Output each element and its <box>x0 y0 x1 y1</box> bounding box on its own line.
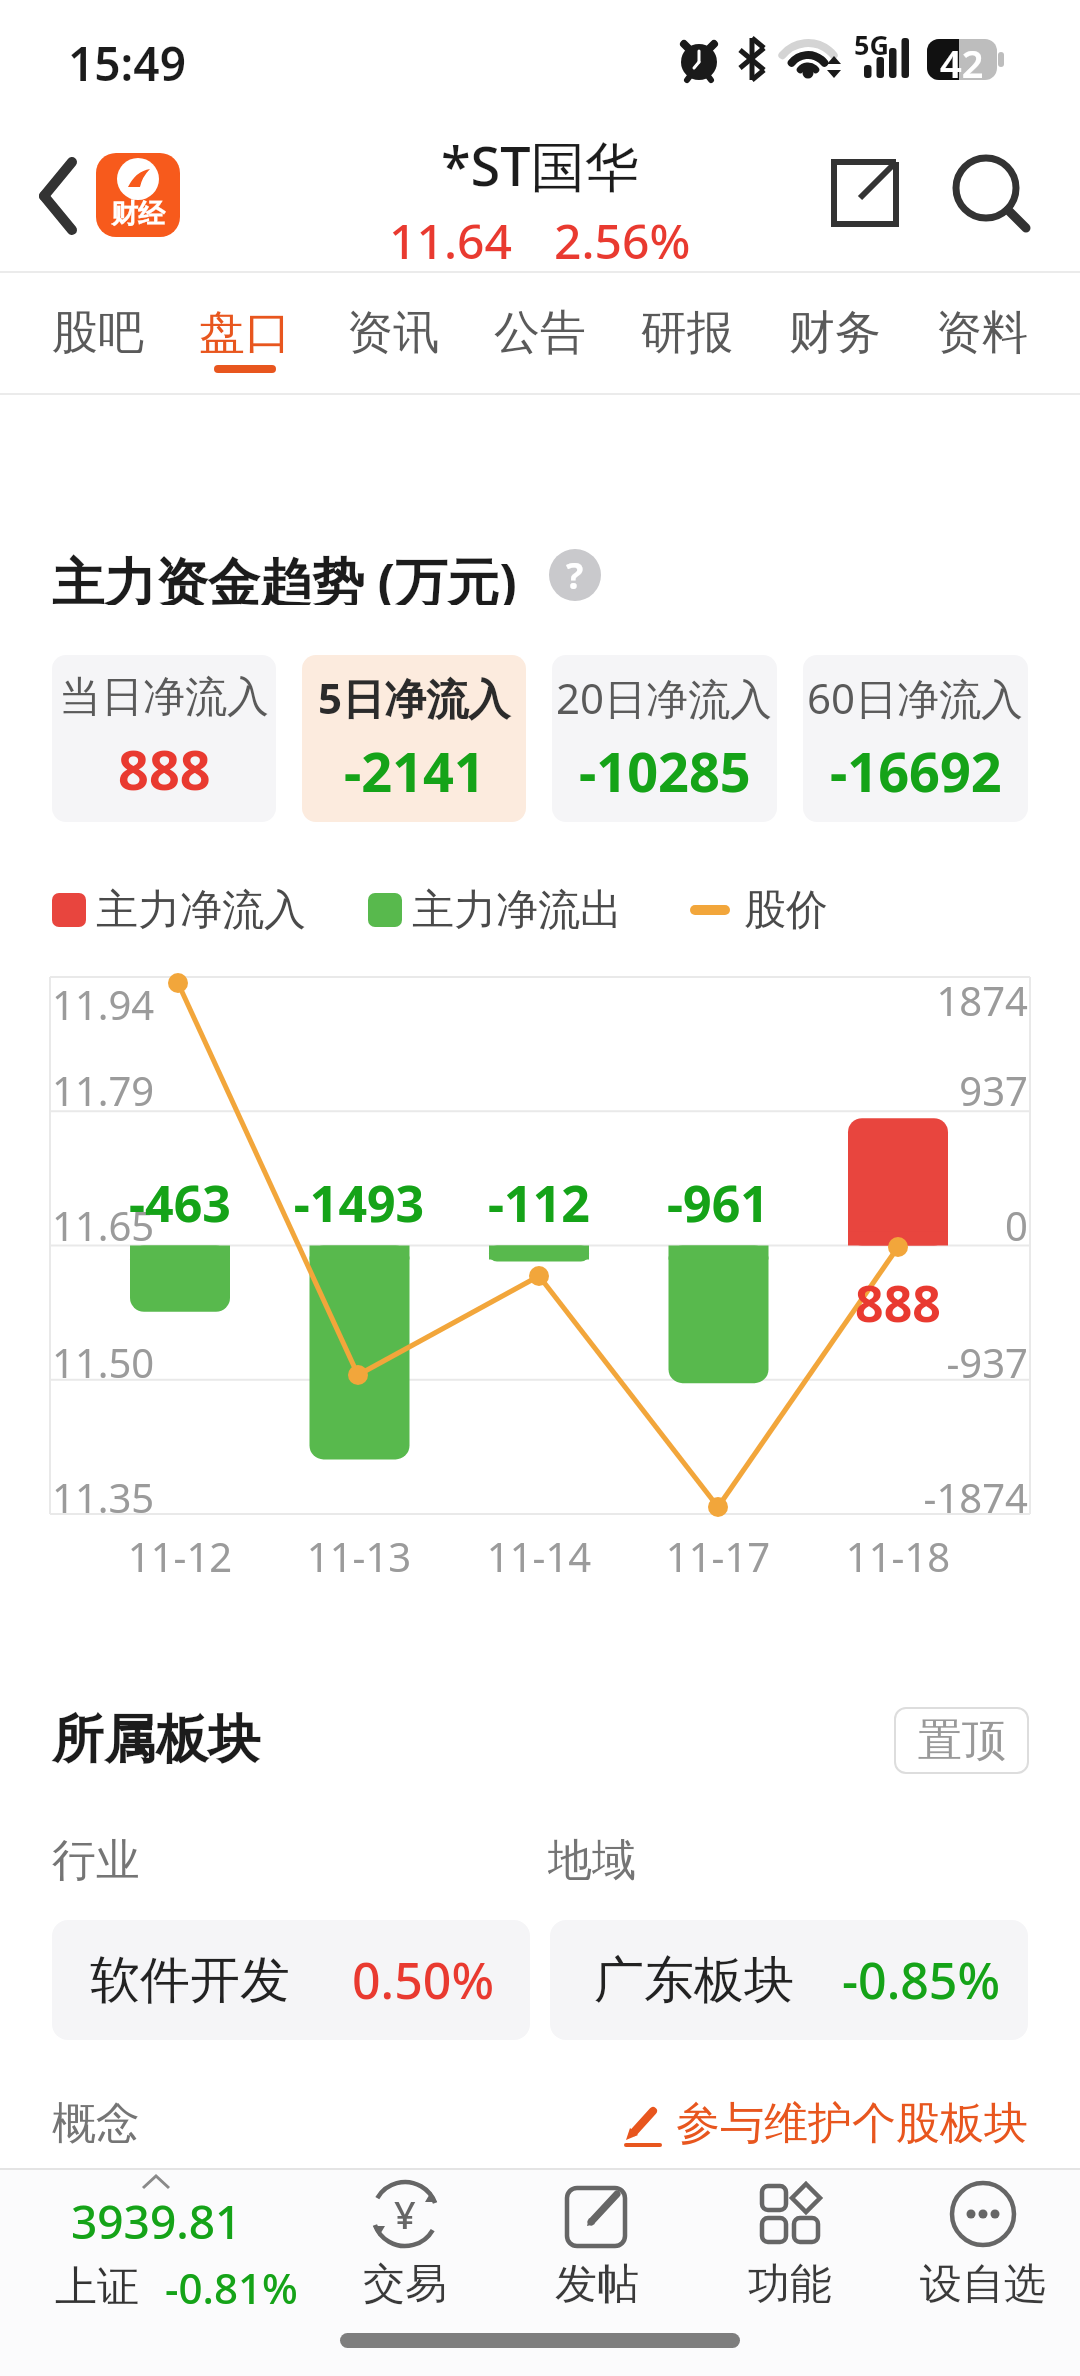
staticText: -0.85% <box>842 1946 1001 2014</box>
staticText: 11-17 <box>598 1529 838 1583</box>
staticText: 11.50 <box>52 1335 155 1389</box>
staticText: 1874 <box>778 973 1028 1027</box>
staticText: 5日净流入 <box>318 669 511 726</box>
staticText: 置顶 <box>918 1713 1006 1768</box>
staticText: 888 <box>778 1269 1018 1337</box>
staticText: 11-14 <box>419 1529 659 1583</box>
staticText: -937 <box>778 1335 1028 1389</box>
staticText: -463 <box>60 1169 300 1237</box>
staticText: 937 <box>778 1063 1028 1117</box>
button[interactable]: 3939.81 <box>40 2176 312 2316</box>
button[interactable]: 资讯 <box>347 273 439 393</box>
button[interactable]: 盘口 <box>199 273 291 393</box>
staticText: 11.35 <box>52 1470 155 1524</box>
staticText: 资讯 <box>347 304 439 362</box>
button[interactable]: 财经 <box>96 153 180 237</box>
staticText: 2.56% <box>554 208 691 273</box>
button[interactable]: 股吧 <box>52 273 144 393</box>
staticText: 股吧 <box>52 304 144 362</box>
staticText: 主力净流入 <box>96 884 306 936</box>
staticText: -112 <box>419 1169 659 1237</box>
staticText: 主力净流出 <box>412 884 622 936</box>
button[interactable] <box>816 148 906 238</box>
staticText: 盘口 <box>199 304 291 362</box>
staticText: 研报 <box>641 304 733 362</box>
staticText: -16692 <box>830 734 1002 808</box>
staticText: 概念 <box>52 2096 140 2151</box>
staticText: -1874 <box>778 1470 1028 1524</box>
staticText: 发帖 <box>555 2258 639 2311</box>
button[interactable]: 设自选 <box>893 2178 1073 2311</box>
staticText: 资料 <box>936 304 1028 362</box>
staticText: 11-12 <box>60 1529 300 1583</box>
staticText: 60日净流入 <box>807 669 1024 726</box>
staticText: ? <box>566 551 584 600</box>
button[interactable]: 发帖 <box>507 2178 687 2311</box>
button[interactable]: 研报 <box>641 273 733 393</box>
staticText: 11.94 <box>52 977 155 1031</box>
staticText: 设自选 <box>920 2258 1046 2311</box>
staticText: 888 <box>118 732 211 806</box>
button[interactable]: 20日净流入 <box>552 655 777 822</box>
staticText: 软件开发 <box>90 1949 290 2012</box>
staticText: 20日净流入 <box>556 669 773 726</box>
button[interactable]: 功能 <box>700 2178 880 2311</box>
staticText: 11-13 <box>239 1529 479 1583</box>
staticText: 财经 <box>111 197 165 231</box>
staticText: 11-18 <box>778 1529 1018 1583</box>
button[interactable]: 5日净流入 <box>302 655 526 822</box>
staticText: 42 <box>940 37 984 89</box>
staticText: 行业 <box>52 1833 140 1883</box>
button[interactable]: 60日净流入 <box>803 655 1028 822</box>
button[interactable]: 软件开发 <box>52 1920 530 2040</box>
staticText: 公告 <box>494 304 586 362</box>
button[interactable]: 参与维护个股板块 <box>620 2096 1028 2151</box>
staticText: 主力资金趋势 (万元) <box>52 545 517 605</box>
staticText: 所属板块 <box>52 1707 260 1773</box>
staticText: 功能 <box>748 2258 832 2311</box>
button[interactable] <box>944 146 1040 242</box>
staticText: -0.81% <box>165 2259 298 2316</box>
staticText: 财务 <box>789 304 881 362</box>
button[interactable]: 当日净流入 <box>52 655 276 822</box>
staticText: *ST国华 <box>441 128 639 202</box>
button[interactable]: ? <box>549 549 601 601</box>
staticText: 地域 <box>548 1833 636 1883</box>
staticText: -961 <box>598 1169 838 1237</box>
staticText: -2141 <box>344 734 485 808</box>
button[interactable]: 公告 <box>494 273 586 393</box>
staticText: 当日净流入 <box>59 671 269 724</box>
staticText: ¥ <box>394 2188 416 2240</box>
staticText: -1493 <box>239 1169 479 1237</box>
staticText: 0 <box>778 1198 1028 1252</box>
button[interactable]: ¥ <box>315 2178 495 2311</box>
button[interactable] <box>20 140 90 250</box>
staticText: -10285 <box>579 734 751 808</box>
staticText: 上证 <box>55 2261 139 2314</box>
staticText: 11.64 <box>389 208 512 273</box>
staticText: 3939.81 <box>71 2190 242 2253</box>
staticText: 5G <box>854 26 889 63</box>
staticText: 股价 <box>744 884 828 936</box>
staticText: 11.65 <box>52 1198 155 1252</box>
button[interactable]: 置顶 <box>894 1707 1029 1774</box>
staticText: 11.79 <box>52 1063 155 1117</box>
staticText: 0.50% <box>352 1946 494 2014</box>
staticText: 15:49 <box>68 32 186 95</box>
staticText: 参与维护个股板块 <box>676 2096 1028 2151</box>
button[interactable]: 财务 <box>789 273 881 393</box>
staticText: 交易 <box>363 2258 447 2311</box>
button[interactable]: 广东板块 <box>550 1920 1028 2040</box>
staticText: 广东板块 <box>594 1949 794 2012</box>
button[interactable]: 资料 <box>936 273 1028 393</box>
